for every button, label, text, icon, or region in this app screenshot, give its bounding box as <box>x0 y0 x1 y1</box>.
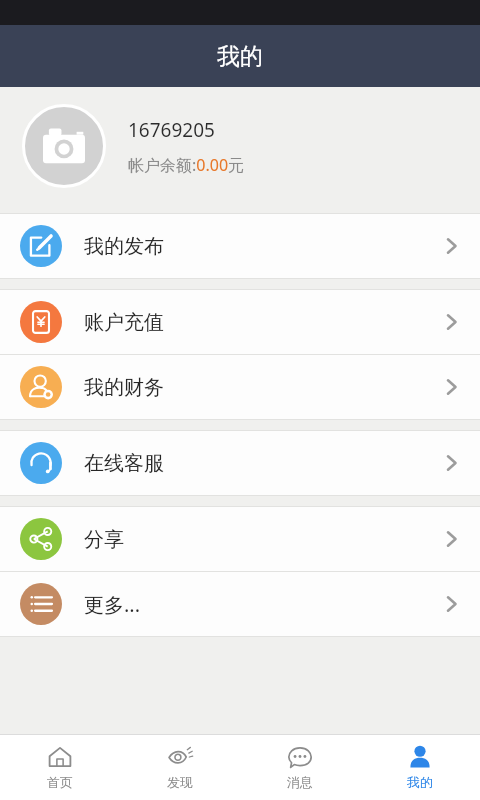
button[interactable]: 我的 <box>360 734 480 800</box>
button[interactable]: 发现 <box>120 734 240 800</box>
staticText: 我的 <box>217 42 263 71</box>
staticText: 首页 <box>47 774 73 790</box>
button[interactable]: 分享 <box>0 507 480 571</box>
staticText: 分享 <box>84 527 444 552</box>
button[interactable]: 更多... <box>0 572 480 636</box>
staticText: 账户充值 <box>84 310 444 335</box>
staticText: 我的 <box>407 774 433 790</box>
button[interactable]: 首页 <box>0 734 120 800</box>
button[interactable]: 16769205 <box>0 87 480 205</box>
staticText: 在线客服 <box>84 451 444 476</box>
staticText: 我的财务 <box>84 375 444 400</box>
staticText: 帐户余额:0.00元 <box>128 154 245 176</box>
button[interactable]: 消息 <box>240 734 360 800</box>
button[interactable]: 在线客服 <box>0 431 480 495</box>
staticText: 消息 <box>287 774 313 790</box>
button[interactable]: 我的财务 <box>0 355 480 419</box>
button[interactable]: 我的发布 <box>0 214 480 278</box>
staticText: 更多... <box>84 591 444 618</box>
staticText: 发现 <box>167 774 193 790</box>
staticText: 我的发布 <box>84 234 444 259</box>
button[interactable]: 账户充值 <box>0 290 480 354</box>
staticText: 16769205 <box>128 117 215 143</box>
